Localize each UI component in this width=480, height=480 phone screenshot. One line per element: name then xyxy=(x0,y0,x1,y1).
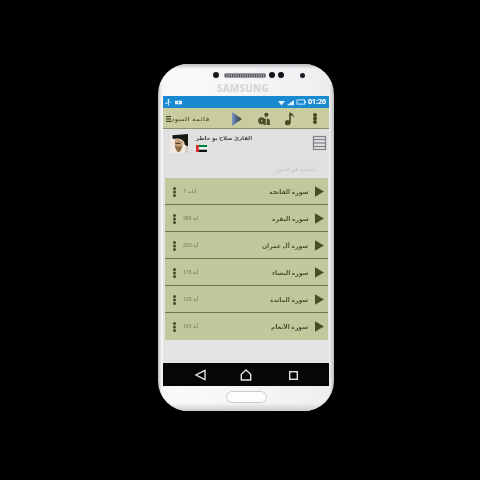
button[interactable]: 200 آية xyxy=(165,232,328,259)
staticText: القارئ صلاح بو خاطر xyxy=(196,134,253,141)
button[interactable]: Recent apps xyxy=(283,365,303,385)
staticText: البحث في السور... xyxy=(276,165,318,172)
button[interactable]: 176 آية xyxy=(165,259,328,286)
button[interactable]: Display options xyxy=(312,136,326,150)
staticText: 200 آية xyxy=(183,242,199,249)
staticText: 01:26 xyxy=(308,97,326,107)
staticText: سورة البقرة xyxy=(272,215,309,223)
button[interactable]: 286 آية xyxy=(165,205,328,232)
button[interactable]: 165 آية xyxy=(165,313,328,340)
staticText: قائمة السور xyxy=(171,115,210,122)
button[interactable]: Reciters xyxy=(255,108,273,129)
button[interactable]: 7 آيات xyxy=(165,178,328,205)
button[interactable]: 120 آية xyxy=(165,286,328,313)
staticText: سورة الأنعام xyxy=(271,323,309,331)
staticText: سورة آل عمران xyxy=(262,242,309,250)
staticText: 176 آية xyxy=(183,269,199,276)
staticText: سورة الفاتحة xyxy=(269,188,309,196)
staticText: سورة النساء xyxy=(272,269,309,277)
staticText: 165 آية xyxy=(183,323,199,330)
button[interactable]: Now playing xyxy=(281,108,298,129)
button[interactable]: Home xyxy=(236,365,256,385)
staticText: 286 آية xyxy=(183,215,199,222)
button[interactable]: Play xyxy=(227,108,247,129)
button[interactable]: Back xyxy=(190,365,210,385)
staticText: سورة المائدة xyxy=(270,296,309,304)
button[interactable]: More options xyxy=(309,108,321,129)
staticText: 120 آية xyxy=(183,296,199,303)
staticText: 7 آيات xyxy=(183,188,197,195)
staticText: SAMSUNG xyxy=(217,81,269,95)
button[interactable]: Menu xyxy=(163,108,173,129)
